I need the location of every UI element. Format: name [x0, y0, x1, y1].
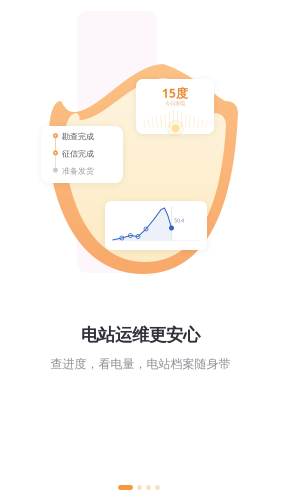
staticText: 今日发电 — [165, 100, 185, 107]
staticText: 准备发货 — [62, 166, 94, 176]
staticText: 查进度，看电量，电站档案随身带 — [50, 357, 230, 371]
staticText: 征信完成 — [62, 149, 94, 159]
staticText: 50.4 — [174, 217, 184, 224]
staticText: 勘查完成 — [62, 132, 94, 142]
staticText: 15度 — [162, 85, 188, 101]
staticText: 电站运维更安心 — [81, 324, 200, 346]
